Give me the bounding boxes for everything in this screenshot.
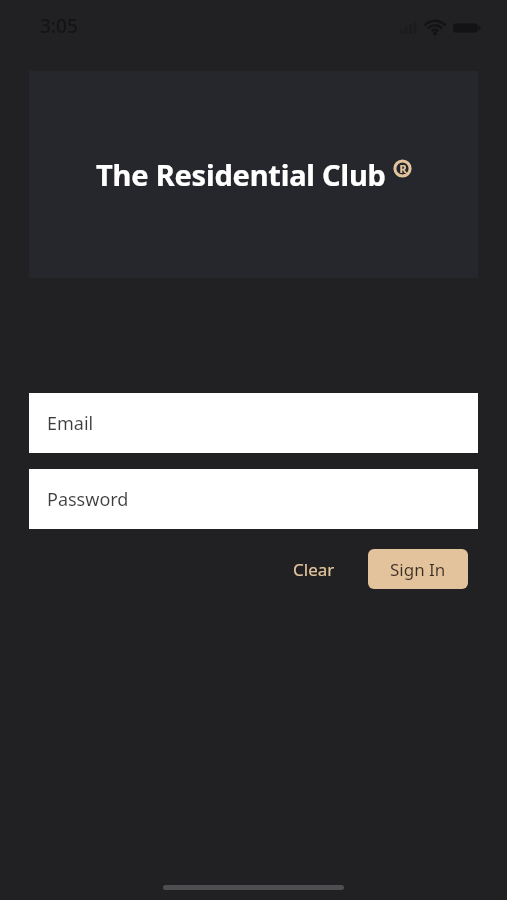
button[interactable]: Clear [276, 549, 351, 589]
staticText: The Residential Club [96, 155, 386, 194]
staticText: Clear [293, 558, 335, 581]
button[interactable]: Sign In [368, 549, 468, 589]
button[interactable]: Email [29, 393, 478, 453]
staticText: R [399, 161, 407, 176]
staticText: Password [47, 487, 129, 512]
staticText: Email [47, 411, 94, 436]
button[interactable]: Password [29, 469, 478, 529]
staticText: Sign In [390, 558, 446, 581]
staticText: 3:05 [40, 13, 78, 39]
